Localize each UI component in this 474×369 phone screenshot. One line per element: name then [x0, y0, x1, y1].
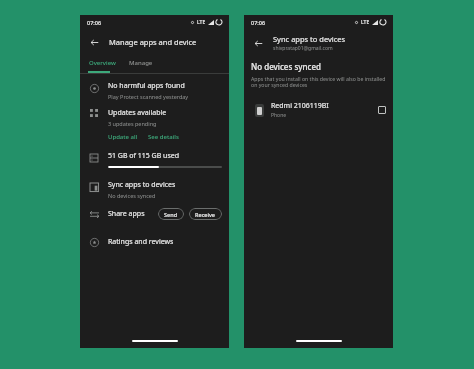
button[interactable]: Send — [158, 208, 184, 220]
button[interactable]: No harmful apps found — [80, 81, 229, 100]
staticText: No devices synced — [108, 192, 156, 199]
button[interactable]: Update all — [108, 133, 138, 141]
staticText: See details — [148, 133, 179, 141]
button[interactable]: Ratings and reviews — [80, 234, 229, 250]
staticText: 51 GB of 115 GB used — [108, 151, 179, 161]
button[interactable]: 51 GB of 115 GB used — [80, 151, 229, 168]
button[interactable]: Sync apps to devices — [80, 180, 229, 199]
staticText: shivpratap01@gmail.com — [273, 45, 333, 52]
staticText: No devices synced — [251, 61, 322, 72]
staticText: Ratings and reviews — [108, 237, 174, 247]
button[interactable]: Overview — [87, 59, 118, 67]
staticText: Play Protect scanned yesterday — [108, 93, 189, 100]
staticText: Overview — [89, 59, 116, 67]
staticText: Redmi 2106119BI — [271, 101, 329, 111]
staticText: Sync apps to devices — [108, 180, 176, 190]
staticText: 07:06 — [87, 19, 102, 26]
button[interactable]: Manage — [127, 59, 155, 67]
staticText: Receive — [195, 211, 216, 218]
staticText: Manage apps and device — [109, 37, 197, 47]
button[interactable]: Receive — [189, 208, 222, 220]
staticText: LTE — [361, 19, 370, 26]
button[interactable]: Redmi 2106119BI — [244, 100, 393, 120]
staticText: Apps that you install on this device wil… — [251, 75, 386, 89]
button[interactable]: Select device — [378, 106, 386, 114]
staticText: Share apps — [108, 209, 145, 219]
staticText: 07:06 — [251, 19, 266, 26]
staticText: No harmful apps found — [108, 81, 185, 91]
staticText: Manage — [129, 59, 153, 67]
staticText: Sync apps to devices — [273, 34, 346, 44]
staticText: Updates available — [108, 108, 167, 118]
button[interactable]: Back — [251, 36, 265, 50]
staticText: Update all — [108, 133, 138, 141]
staticText: Send — [164, 211, 178, 218]
staticText: Phone — [271, 112, 287, 119]
button[interactable]: See details — [148, 133, 179, 141]
staticText: 3 updates pending — [108, 120, 157, 127]
button[interactable]: Updates available — [80, 108, 229, 141]
staticText: LTE — [197, 19, 206, 26]
button[interactable]: Back — [87, 35, 101, 49]
